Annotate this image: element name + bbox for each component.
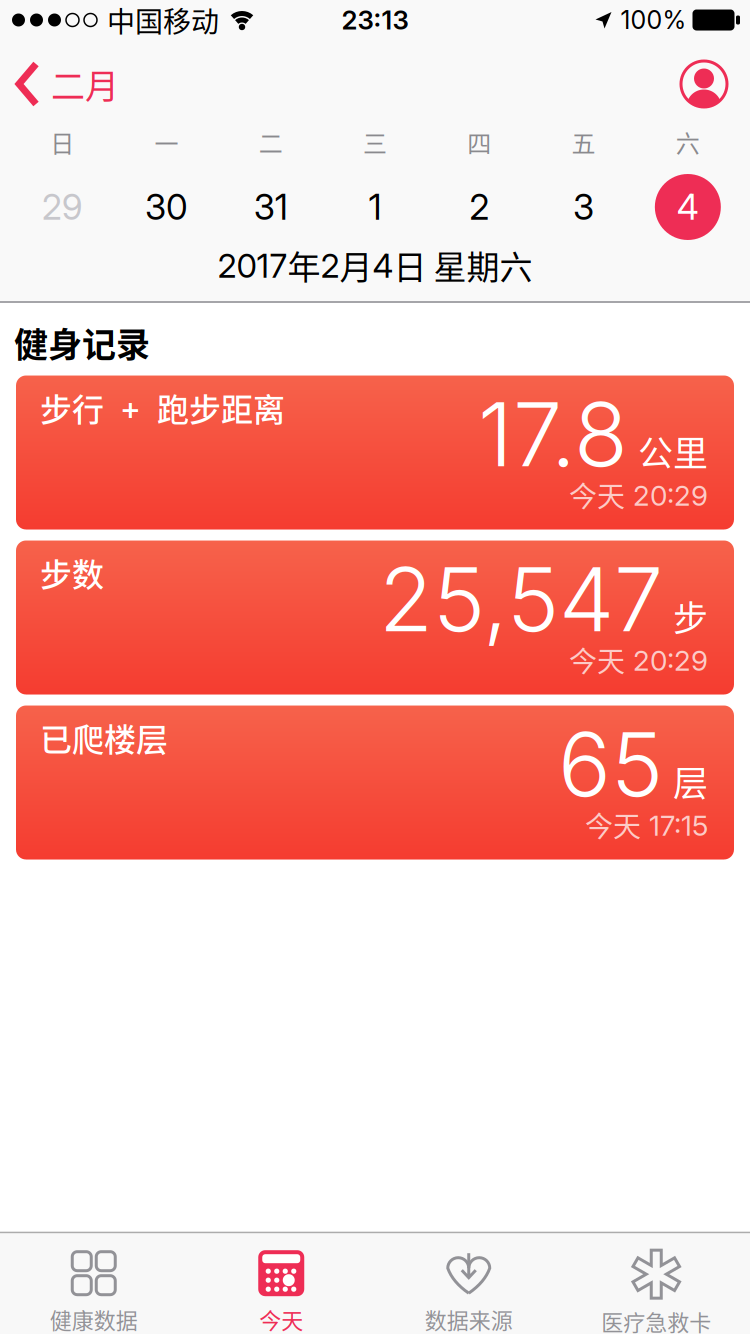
staticText: 29 — [42, 186, 83, 228]
button[interactable]: 30 — [114, 174, 219, 240]
staticText: 日 — [50, 128, 74, 156]
button[interactable]: 今天 — [187, 1233, 375, 1332]
staticText: 医疗急救卡 — [601, 1308, 711, 1334]
staticText: 六 — [676, 128, 700, 156]
button[interactable]: 2 — [427, 174, 531, 240]
staticText: 健身记录 — [14, 322, 150, 363]
staticText: 步 — [673, 595, 708, 637]
staticText: 2 — [469, 186, 489, 228]
staticText: 今天 20:29 — [569, 478, 708, 511]
staticText: 四 — [467, 128, 491, 156]
staticText: 数据来源 — [425, 1306, 513, 1332]
staticText: 100% — [620, 5, 686, 35]
staticText: 步数 — [40, 553, 104, 591]
staticText: 步行 + 跑步距离 — [40, 388, 285, 426]
button[interactable]: 1 — [323, 174, 427, 240]
button[interactable]: 29 — [10, 174, 114, 240]
button[interactable]: 3 — [531, 174, 636, 240]
staticText: 健康数据 — [50, 1306, 138, 1332]
staticText: 今天 17:15 — [585, 808, 708, 841]
button[interactable]: 31 — [219, 174, 323, 240]
staticText: 今天 — [259, 1306, 303, 1332]
staticText: 二 — [259, 128, 283, 156]
staticText: 65 — [558, 716, 663, 812]
staticText: 五 — [572, 128, 596, 156]
staticText: 23:13 — [341, 4, 408, 36]
button[interactable]: 数据来源 — [375, 1233, 562, 1332]
button[interactable]: 二月 — [14, 61, 119, 107]
staticText: 中国移动 — [107, 3, 219, 37]
staticText: 1 — [368, 186, 381, 228]
staticText: 4 — [677, 186, 699, 228]
staticText: 2017年2月4日 星期六 — [217, 245, 532, 285]
staticText: 31 — [254, 186, 288, 228]
staticText: 今天 20:29 — [569, 643, 708, 676]
staticText: 公里 — [638, 430, 708, 472]
button[interactable]: 健康数据 — [0, 1233, 187, 1332]
staticText: 三 — [363, 128, 387, 156]
button[interactable]: 已爬楼层 — [16, 705, 734, 859]
staticText: 25,547 — [379, 551, 663, 647]
staticText: 30 — [145, 186, 188, 228]
staticText: 17.8 — [478, 386, 628, 482]
button[interactable]: 医疗急救卡 — [562, 1233, 750, 1334]
button[interactable] — [680, 60, 728, 108]
button[interactable]: 步行 + 跑步距离 — [16, 375, 734, 529]
button[interactable]: 4 — [636, 174, 740, 240]
staticText: 二月 — [51, 64, 119, 104]
staticText: 已爬楼层 — [40, 718, 168, 756]
staticText: 一 — [154, 128, 178, 156]
button[interactable]: 步数 — [16, 540, 734, 694]
staticText: 层 — [673, 760, 708, 802]
staticText: 3 — [573, 186, 594, 228]
